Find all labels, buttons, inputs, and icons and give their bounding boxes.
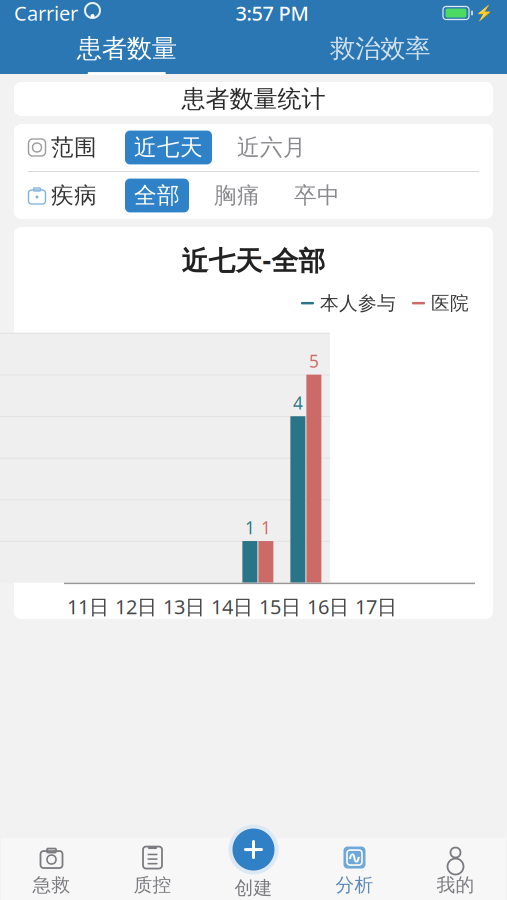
staticText: 全部 — [134, 182, 180, 209]
staticText: 质控 — [133, 873, 171, 896]
staticText: 近七天 — [134, 134, 203, 161]
staticText: 1 — [261, 516, 271, 539]
staticText: 近七天-全部 — [181, 242, 325, 278]
staticText: 12日 — [115, 593, 157, 620]
button[interactable]: 急救 — [1, 842, 102, 900]
staticText: Carrier — [14, 0, 78, 26]
staticText: 我的 — [436, 873, 474, 896]
button[interactable]: 创建 — [203, 824, 304, 900]
staticText: 15日 — [259, 593, 301, 620]
button[interactable]: ∿ — [304, 842, 405, 900]
staticText: 范围 — [51, 134, 97, 161]
staticText: 胸痛 — [214, 182, 260, 209]
staticText: 急救 — [32, 873, 70, 896]
button[interactable]: 质控 — [102, 842, 203, 900]
button[interactable]: 救治效率 — [253, 26, 507, 74]
staticText: 4 — [293, 391, 303, 414]
staticText: 14日 — [211, 593, 253, 620]
button[interactable]: 患者数量 — [0, 26, 253, 74]
button[interactable]: 我的 — [405, 842, 506, 900]
button[interactable]: 近七天 — [125, 131, 212, 164]
button[interactable]: 胸痛 — [205, 179, 269, 212]
staticText: 5 — [309, 350, 319, 373]
button[interactable]: 卒中 — [285, 179, 349, 212]
staticText: 17日 — [355, 593, 397, 620]
button[interactable]: 近六月 — [228, 131, 315, 164]
staticText: 创建 — [234, 876, 272, 899]
staticText: 卒中 — [294, 182, 340, 209]
button[interactable]: 全部 — [125, 179, 189, 212]
staticText: 本人参与 — [320, 292, 396, 315]
staticText: 3:57 PM — [235, 0, 308, 26]
staticText: 近六月 — [237, 134, 306, 161]
staticText: 患者数量 — [77, 33, 177, 64]
staticText: 医院 — [431, 292, 469, 315]
staticText: 16日 — [307, 593, 349, 620]
staticText: 救治效率 — [330, 33, 430, 64]
staticText: 1 — [245, 516, 255, 539]
staticText: 疾病 — [51, 182, 97, 209]
staticText: 分析 — [335, 873, 373, 896]
staticText: 11日 — [67, 593, 109, 620]
staticText: ∿ — [347, 848, 362, 867]
staticText: 患者数量统计 — [181, 84, 325, 114]
staticText: ⚡ — [475, 5, 493, 21]
staticText: 13日 — [163, 593, 205, 620]
